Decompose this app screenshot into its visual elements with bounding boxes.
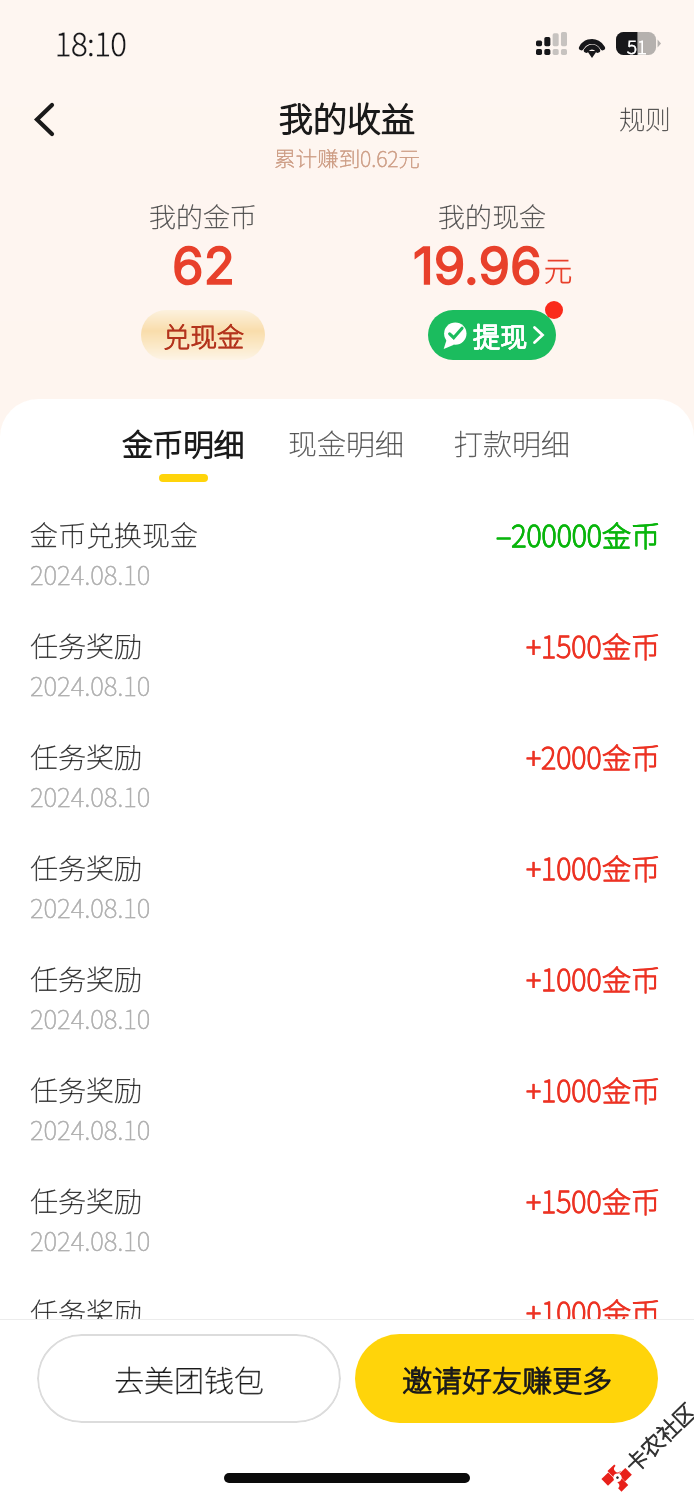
staticText: 我的金币 [149, 196, 257, 235]
staticText: 2024.08.10 [30, 1332, 151, 1370]
staticText: 金币 [602, 957, 661, 999]
staticText: 2024.08.10 [30, 555, 151, 593]
staticText: 2024.08.10 [30, 1110, 151, 1148]
staticText: 卡农社区 [616, 1394, 694, 1479]
staticText: 金币明细 [122, 421, 245, 465]
staticText: 打款明细 [454, 421, 571, 463]
button[interactable]: 任务奖励 [0, 732, 694, 843]
button[interactable]: 任务奖励 [0, 1287, 694, 1398]
staticText: 任务奖励 [30, 736, 143, 777]
staticText: –200000 [496, 513, 602, 555]
staticText: +2000 [526, 735, 602, 777]
button[interactable]: 现金明细 [286, 421, 407, 463]
staticText: +1000 [526, 1290, 602, 1332]
staticText: 任务奖励 [30, 736, 143, 777]
staticText: 金币 [602, 1290, 661, 1332]
staticText: +1000 [526, 846, 602, 888]
staticText: 金币 [602, 1068, 661, 1110]
staticText: 金币 [602, 735, 661, 777]
staticText: 18:10 [55, 20, 127, 65]
staticText: 金币 [602, 624, 661, 666]
staticText: 任务奖励 [30, 625, 143, 666]
button[interactable]: 打款明细 [452, 421, 573, 463]
staticText: 我的收益 [279, 93, 415, 142]
staticText: +1000 [526, 957, 602, 999]
staticText: 2024.08.10 [30, 1221, 151, 1259]
staticText: 任务奖励 [30, 1180, 143, 1221]
staticText: +2000 [526, 735, 602, 777]
staticText: 现金明细 [288, 421, 405, 463]
staticText: 提现 [473, 316, 527, 355]
staticText: 金币 [602, 846, 661, 888]
button[interactable]: 规则 [605, 89, 686, 147]
staticText: 金币兑换现金 [30, 514, 199, 555]
button[interactable]: Back [16, 91, 72, 147]
staticText: 2024.08.10 [30, 888, 151, 926]
staticText: 19.96 [413, 235, 542, 297]
staticText: 2024.08.10 [30, 999, 151, 1037]
staticText: 金币明细 [122, 421, 245, 465]
button[interactable]: 任务奖励 [0, 1065, 694, 1176]
staticText: 去美团钱包 [114, 1357, 264, 1400]
staticText: 金币 [602, 1068, 661, 1110]
button[interactable]: 兑现金 [141, 310, 265, 360]
staticText: 任务奖励 [30, 958, 143, 999]
staticText: 金币 [602, 513, 661, 555]
staticText: 2024.08.10 [30, 1332, 151, 1370]
staticText: +1500 [526, 624, 602, 666]
staticText: 金币 [602, 1179, 661, 1221]
staticText: +1000 [526, 957, 602, 999]
staticText: 金币 [602, 735, 661, 777]
staticText: +1000 [526, 1290, 602, 1332]
staticText: 卡农社区 [616, 1394, 694, 1479]
staticText: 打款明细 [454, 421, 571, 463]
staticText: 兑现金 [163, 316, 244, 355]
staticText: 任务奖励 [30, 958, 143, 999]
staticText: 现金明细 [288, 421, 405, 463]
staticText: 2024.08.10 [30, 777, 151, 815]
staticText: 金币兑换现金 [30, 514, 199, 555]
staticText: 金币 [602, 846, 661, 888]
staticText: 任务奖励 [30, 625, 143, 666]
staticText: 2024.08.10 [30, 999, 151, 1037]
staticText: 任务奖励 [30, 1291, 143, 1332]
staticText: 邀请好友赚更多 [402, 1357, 612, 1400]
button[interactable]: 任务奖励 [0, 843, 694, 954]
staticText: 我的现金 [438, 196, 546, 235]
staticText: +1000 [526, 1068, 602, 1110]
staticText: 规则 [619, 99, 672, 137]
button[interactable]: 提现 [428, 310, 556, 360]
staticText: 邀请好友赚更多 [402, 1357, 612, 1400]
staticText: 任务奖励 [30, 1069, 143, 1110]
staticText: 2024.08.10 [30, 666, 151, 704]
staticText: +1000 [526, 846, 602, 888]
staticText: 2024.08.10 [30, 666, 151, 704]
button[interactable]: 任务奖励 [0, 621, 694, 732]
staticText: +1500 [526, 1179, 602, 1221]
button[interactable]: 任务奖励 [0, 954, 694, 1065]
staticText: 51 [627, 32, 647, 55]
staticText: 累计赚到0.62元 [274, 142, 421, 173]
button[interactable]: 去美团钱包 [37, 1334, 341, 1423]
staticText: 兑现金 [163, 316, 244, 355]
staticText: –200000 [496, 513, 602, 555]
staticText: +1500 [526, 1179, 602, 1221]
staticText: 元 [544, 249, 573, 290]
button[interactable]: 金币兑换现金 [0, 510, 694, 621]
staticText: 任务奖励 [30, 847, 143, 888]
staticText: 任务奖励 [30, 847, 143, 888]
staticText: 提现 [473, 316, 527, 355]
button[interactable]: 任务奖励 [0, 1176, 694, 1287]
staticText: 我的金币 [149, 196, 257, 235]
staticText: +1000 [526, 1068, 602, 1110]
staticText: +1500 [526, 624, 602, 666]
button[interactable]: 邀请好友赚更多 [355, 1334, 658, 1423]
staticText: 金币 [602, 1290, 661, 1332]
staticText: 规则 [619, 99, 672, 137]
staticText: 累计赚到0.62元 [274, 142, 421, 173]
staticText: 去美团钱包 [114, 1357, 264, 1400]
staticText: 金币 [602, 1179, 661, 1221]
staticText: 任务奖励 [30, 1069, 143, 1110]
button[interactable]: 金币明细 [120, 421, 247, 482]
staticText: 金币 [602, 513, 661, 555]
